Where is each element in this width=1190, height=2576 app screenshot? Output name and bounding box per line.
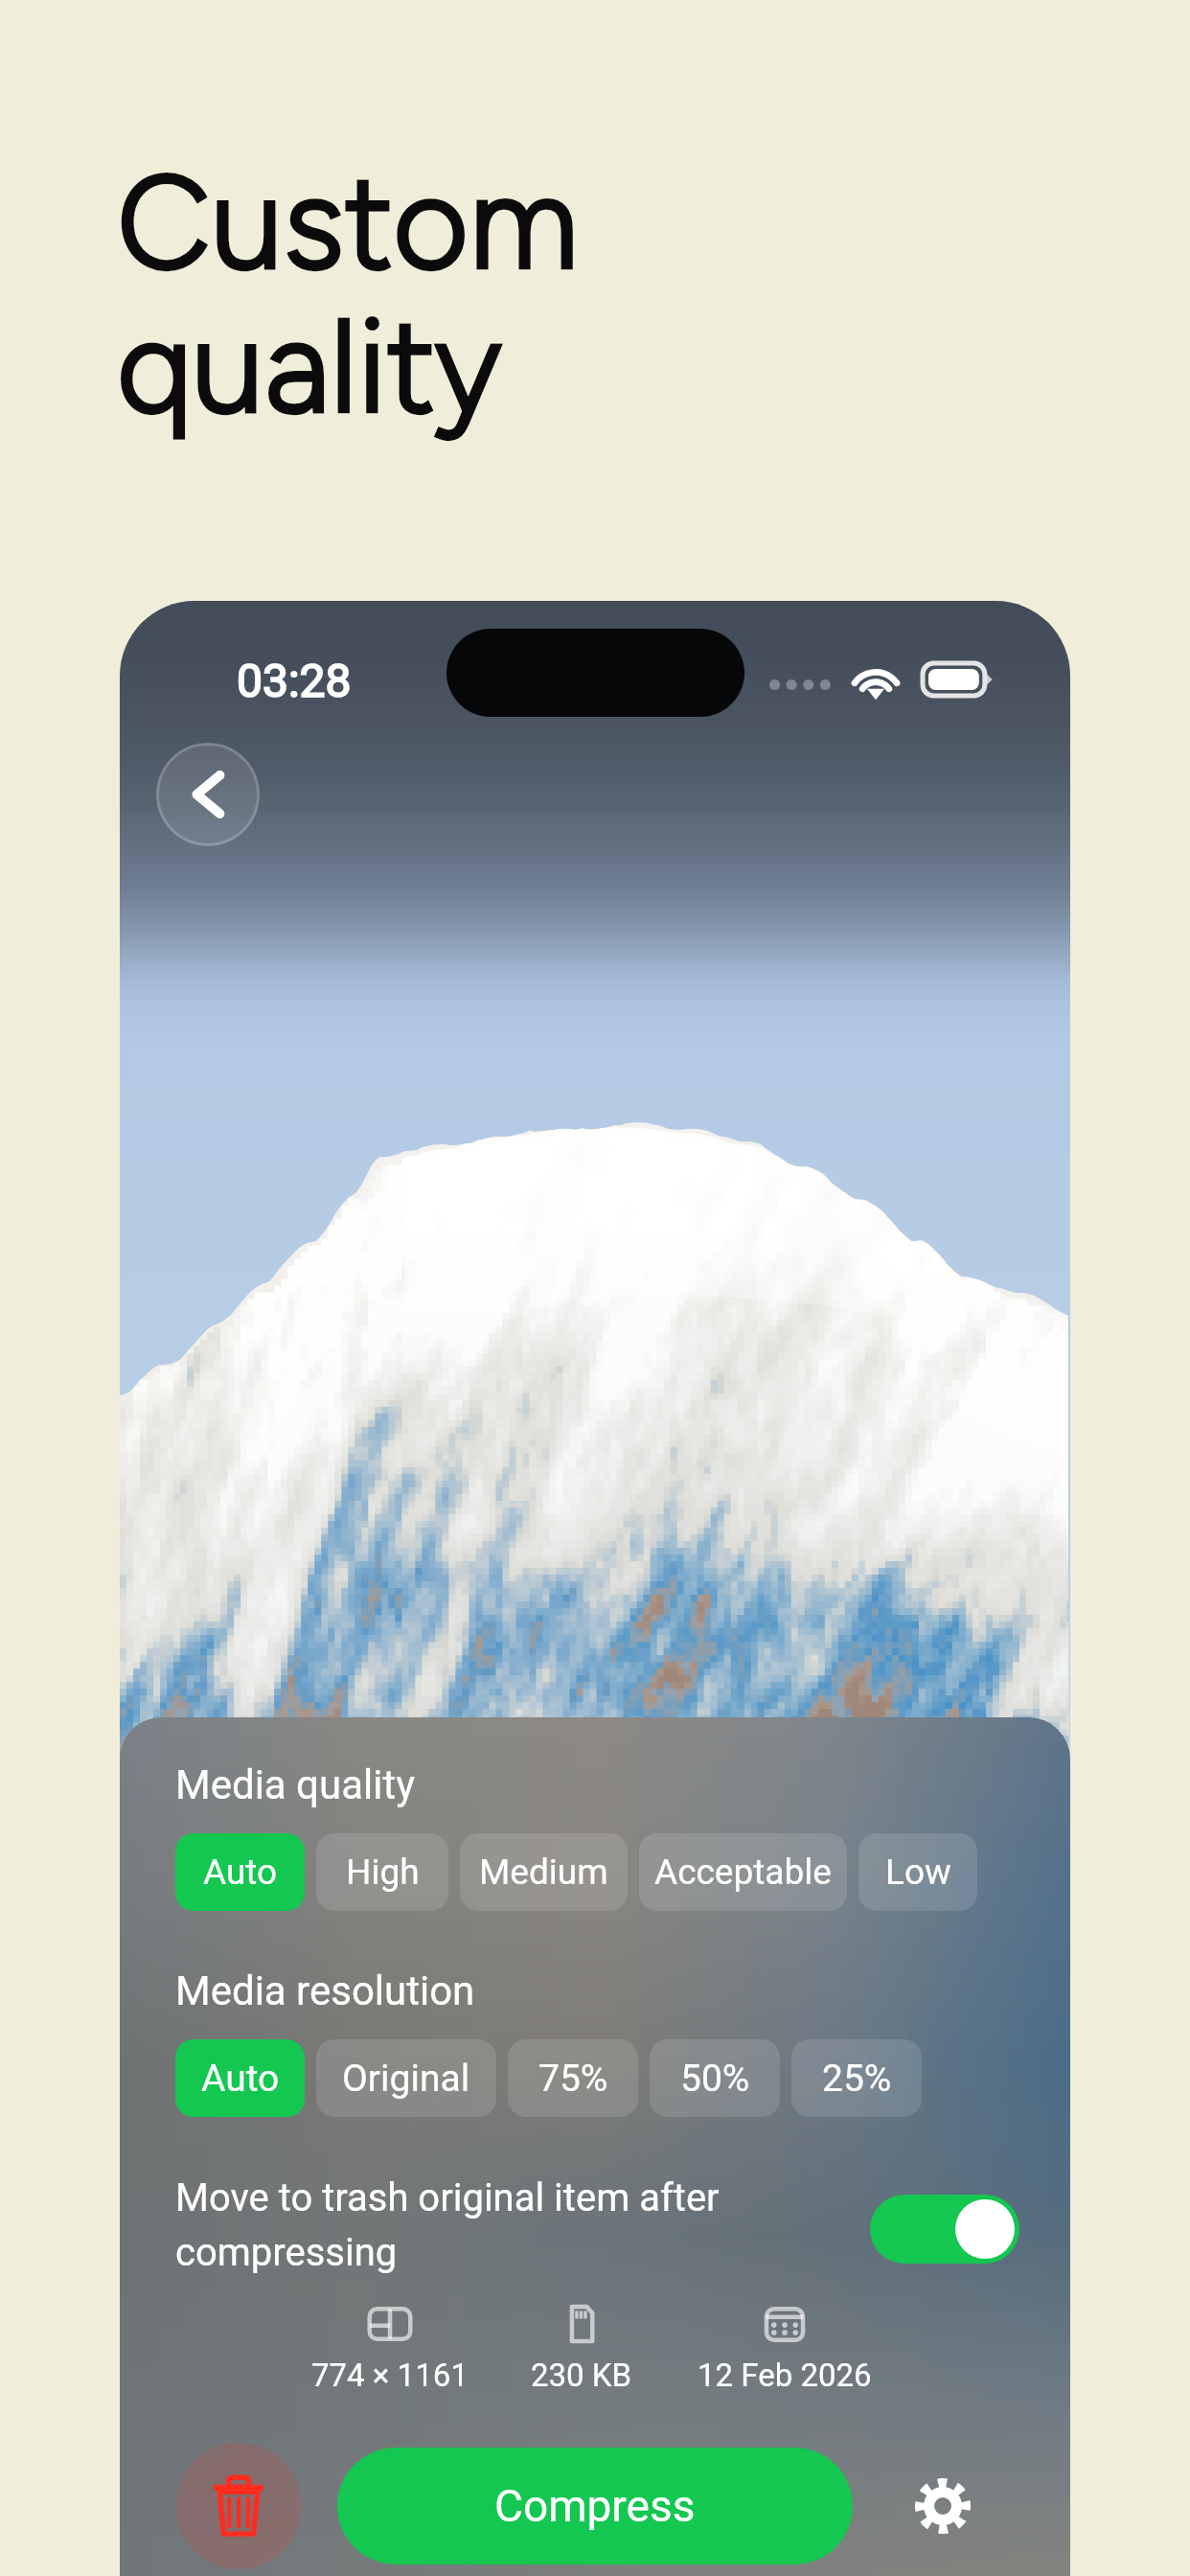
button[interactable]: Medium xyxy=(460,1833,628,1911)
button[interactable]: Settings xyxy=(890,2453,995,2559)
staticText: Move to trash original item after compre… xyxy=(175,2175,720,2275)
staticText: Acceptable xyxy=(654,1851,832,1893)
button[interactable]: Back xyxy=(156,743,260,846)
button[interactable]: 75% xyxy=(508,2039,638,2117)
staticText: 75% xyxy=(538,2057,608,2101)
staticText: Compress xyxy=(494,2480,696,2532)
staticText: Original xyxy=(342,2057,470,2101)
button[interactable]: Original xyxy=(316,2039,496,2117)
staticText: 12 Feb 2026 xyxy=(698,2357,872,2394)
staticText: Media resolution xyxy=(175,1967,475,2014)
staticText: Auto xyxy=(201,2057,280,2101)
button[interactable]: Acceptable xyxy=(639,1833,847,1911)
button[interactable]: Delete xyxy=(175,2443,302,2569)
staticText: 25% xyxy=(822,2057,892,2101)
staticText: 03:28 xyxy=(237,654,352,707)
button[interactable]: Move to trash toggle xyxy=(870,2195,1019,2264)
button[interactable]: High xyxy=(316,1833,448,1911)
button[interactable]: 25% xyxy=(791,2039,922,2117)
staticText: 774 × 1161 xyxy=(311,2357,469,2394)
staticText: High xyxy=(346,1851,420,1893)
staticText: Media quality xyxy=(175,1761,416,1808)
button[interactable]: Low xyxy=(858,1833,977,1911)
staticText: Custom quality xyxy=(117,144,580,444)
button[interactable]: 50% xyxy=(650,2039,780,2117)
button[interactable]: Auto xyxy=(175,1833,305,1911)
staticText: Low xyxy=(885,1851,951,1893)
staticText: 50% xyxy=(680,2057,750,2101)
staticText: 230 KB xyxy=(531,2357,632,2394)
button[interactable]: Auto xyxy=(175,2039,305,2117)
staticText: Medium xyxy=(479,1851,608,1893)
button[interactable]: Compress xyxy=(337,2448,853,2564)
staticText: Auto xyxy=(203,1851,278,1893)
